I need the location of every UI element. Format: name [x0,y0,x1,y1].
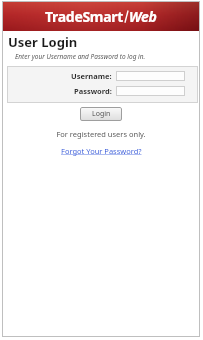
button[interactable]: Password input field [116,86,185,96]
button[interactable]: Login [80,107,122,121]
staticText: Username: [71,71,112,81]
button[interactable]: Username input field [116,71,185,81]
staticText: Login [92,109,111,119]
staticText: TradeSmart [45,7,124,26]
staticText: Password: [74,86,112,96]
staticText: User Login [8,33,78,51]
button[interactable]: Forgot Your Password? [61,146,142,156]
staticText: Forgot Your Password? [61,146,142,156]
staticText: Enter your Username and Password to log … [15,52,146,61]
staticText: Web [129,7,157,26]
staticText: For registered users only. [2,129,200,139]
